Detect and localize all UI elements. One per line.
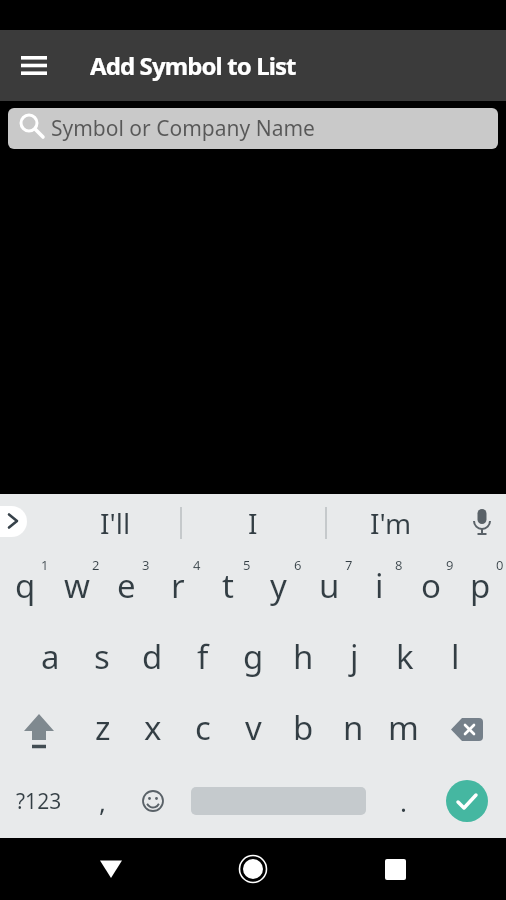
staticText: 7 — [345, 556, 353, 574]
button[interactable] — [71, 838, 151, 900]
staticText: y — [270, 563, 287, 608]
button[interactable] — [0, 30, 68, 101]
staticText: 4 — [193, 556, 201, 574]
button[interactable]: f — [177, 623, 228, 694]
button[interactable]: i — [354, 552, 405, 623]
staticText: m — [388, 705, 419, 750]
button[interactable]: r — [152, 552, 203, 623]
button[interactable]: a — [25, 623, 76, 694]
button[interactable]: x — [128, 694, 178, 764]
staticText: x — [144, 705, 162, 750]
staticText: e — [117, 563, 136, 608]
button[interactable]: o — [405, 552, 456, 623]
staticText: u — [319, 563, 340, 608]
staticText: I — [248, 504, 258, 542]
staticText: k — [396, 634, 414, 679]
staticText: s — [94, 634, 110, 679]
button[interactable]: ?123 — [0, 764, 77, 838]
staticText: o — [421, 563, 441, 608]
button[interactable] — [0, 506, 27, 537]
button[interactable]: l — [430, 623, 481, 694]
staticText: c — [195, 705, 211, 750]
staticText: , — [99, 784, 106, 819]
button[interactable] — [428, 764, 506, 838]
button[interactable]: h — [278, 623, 329, 694]
button[interactable]: d — [127, 623, 178, 694]
staticText: 0 — [496, 556, 504, 574]
button[interactable]: n — [328, 694, 378, 764]
staticText: w — [64, 563, 90, 608]
staticText: z — [95, 705, 111, 750]
staticText: n — [343, 705, 364, 750]
button[interactable]: e — [101, 552, 152, 623]
button[interactable]: s — [76, 623, 127, 694]
staticText: t — [222, 563, 234, 608]
staticText: . — [400, 784, 407, 819]
button[interactable]: u — [304, 552, 355, 623]
button[interactable]: c — [178, 694, 228, 764]
staticText: j — [350, 634, 359, 679]
button[interactable]: z — [78, 694, 128, 764]
staticText: 1 — [41, 556, 49, 574]
button[interactable]: I'll — [65, 494, 165, 552]
button[interactable] — [458, 494, 506, 552]
staticText: 9 — [446, 556, 454, 574]
button[interactable]: g — [228, 623, 279, 694]
staticText: d — [142, 634, 163, 679]
button[interactable]: I — [203, 494, 303, 552]
staticText: Add Symbol to List — [90, 49, 296, 82]
staticText: g — [243, 634, 264, 679]
button[interactable]: , — [77, 764, 128, 838]
button[interactable] — [128, 764, 178, 838]
button[interactable]: t — [202, 552, 253, 623]
button[interactable] — [355, 838, 435, 900]
staticText: p — [470, 563, 491, 608]
staticText: 8 — [395, 556, 403, 574]
button[interactable]: y — [253, 552, 304, 623]
button[interactable]: v — [228, 694, 278, 764]
staticText: b — [293, 705, 314, 750]
staticText: Symbol or Company Name — [51, 114, 315, 143]
button[interactable] — [213, 838, 293, 900]
staticText: 5 — [243, 556, 251, 574]
button[interactable]: p — [455, 552, 506, 623]
button[interactable] — [0, 694, 78, 764]
button[interactable]: j — [329, 623, 380, 694]
button[interactable]: I'm — [341, 494, 441, 552]
staticText: 6 — [294, 556, 302, 574]
staticText: l — [451, 634, 460, 679]
button[interactable]: . — [378, 764, 428, 838]
button[interactable]: w — [51, 552, 102, 623]
staticText: v — [245, 705, 262, 750]
staticText: r — [171, 563, 185, 608]
staticText: I'm — [370, 504, 412, 542]
staticText: 2 — [92, 556, 100, 574]
staticText: i — [375, 563, 384, 608]
staticText: I'll — [100, 504, 131, 542]
button[interactable] — [178, 764, 378, 838]
button[interactable] — [428, 694, 506, 764]
button[interactable]: m — [378, 694, 428, 764]
button[interactable]: b — [278, 694, 328, 764]
staticText: h — [293, 634, 314, 679]
staticText: f — [197, 634, 209, 679]
button[interactable]: k — [379, 623, 430, 694]
staticText: q — [15, 563, 36, 608]
staticText: 3 — [142, 556, 150, 574]
button[interactable]: Symbol or Company Name — [8, 108, 498, 149]
staticText: ?123 — [16, 787, 62, 816]
staticText: a — [41, 634, 60, 679]
button[interactable]: q — [0, 552, 51, 623]
